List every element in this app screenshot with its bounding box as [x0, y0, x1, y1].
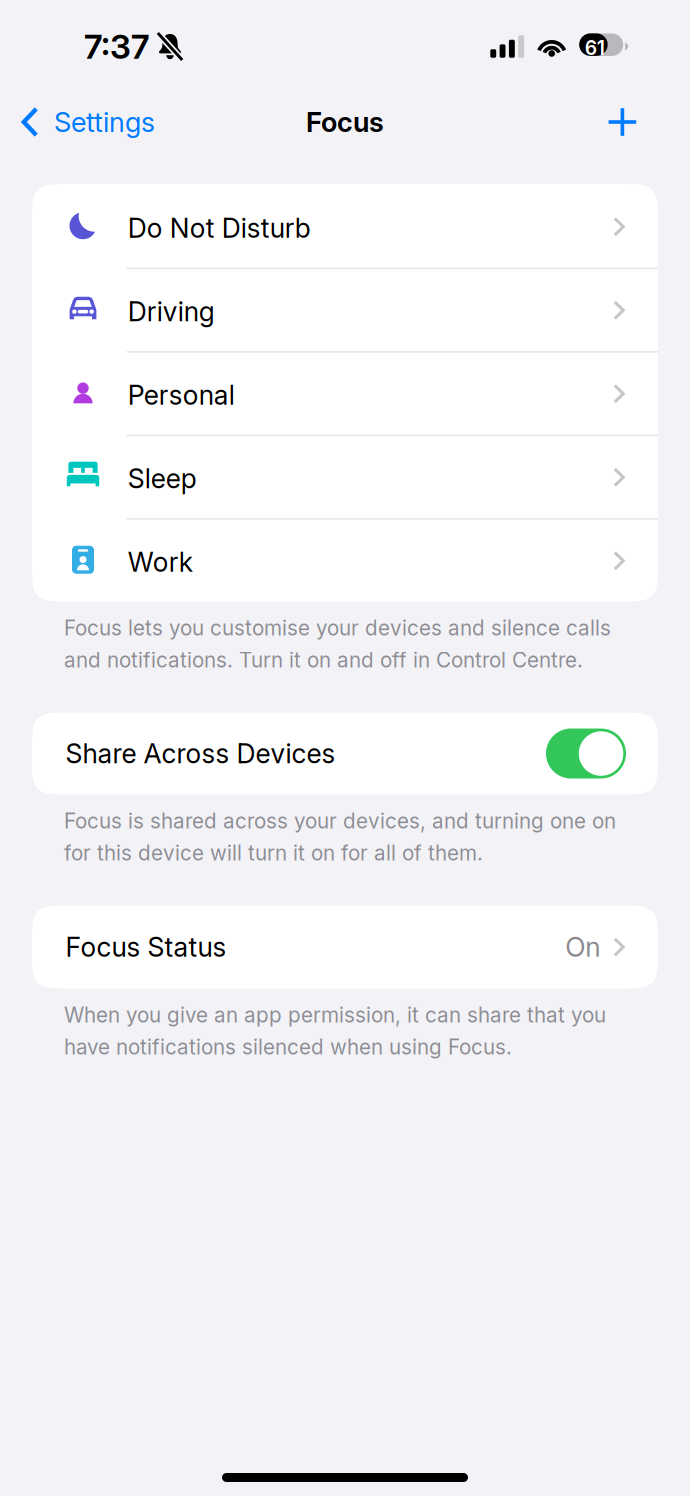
- staticText: Share Across Devices: [66, 737, 336, 770]
- staticText: 61: [585, 36, 605, 60]
- staticText: When you give an app permission, it can …: [64, 1002, 606, 1059]
- staticText: Personal: [128, 379, 235, 411]
- staticText: Sleep: [128, 462, 197, 495]
- staticText: Work: [128, 546, 193, 578]
- button[interactable]: Sleep: [32, 434, 658, 518]
- button[interactable]: Driving: [32, 267, 658, 351]
- staticText: Settings: [54, 105, 155, 139]
- staticText: Focus is shared across your devices, and…: [64, 808, 616, 865]
- button[interactable]: Share Across Devices: [546, 728, 626, 778]
- button[interactable]: Work: [32, 518, 658, 601]
- staticText: Focus: [306, 105, 384, 139]
- staticText: Driving: [128, 295, 215, 328]
- button[interactable]: Add Focus: [593, 92, 652, 152]
- staticText: On: [565, 931, 600, 963]
- button[interactable]: Settings: [0, 93, 169, 151]
- staticText: 7:37: [84, 26, 150, 67]
- staticText: Focus Status: [66, 931, 227, 963]
- button[interactable]: Focus Status: [32, 905, 658, 988]
- staticText: Focus lets you customise your devices an…: [64, 615, 611, 672]
- button[interactable]: Personal: [32, 351, 658, 434]
- staticText: Do Not Disturb: [128, 212, 311, 244]
- button[interactable]: Do Not Disturb: [32, 184, 658, 267]
